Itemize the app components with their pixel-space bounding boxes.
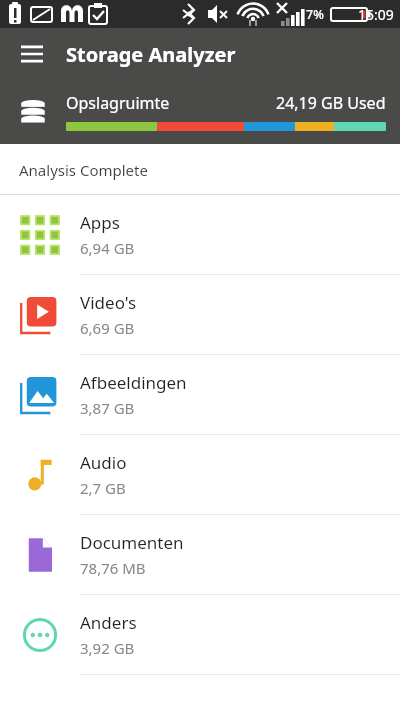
staticText: 3,92 GB (80, 638, 135, 658)
staticText: Audio (80, 451, 127, 474)
button[interactable]: Opslagruimte (0, 80, 400, 142)
staticText: 15:09 (358, 5, 394, 24)
button[interactable]: Documenten (0, 515, 400, 594)
button[interactable]: Apps (0, 195, 400, 274)
button[interactable]: Open navigation menu (12, 34, 52, 74)
staticText: 6,69 GB (80, 318, 135, 338)
button[interactable]: Anders (0, 595, 400, 674)
staticText: Opslagruimte (66, 92, 170, 114)
staticText: Documenten (80, 531, 184, 554)
staticText: Analysis Complete (19, 160, 148, 180)
staticText: Apps (80, 211, 120, 234)
staticText: Storage Analyzer (66, 41, 236, 68)
staticText: 2,7 GB (80, 478, 126, 498)
staticText: 24,19 GB Used (276, 92, 386, 114)
button[interactable]: Afbeeldingen (0, 355, 400, 434)
staticText: 6,94 GB (80, 238, 135, 258)
staticText: 3,87 GB (80, 398, 135, 418)
button[interactable]: Video's (0, 275, 400, 354)
staticText: 7% (306, 6, 324, 23)
staticText: Afbeeldingen (80, 371, 187, 394)
button[interactable]: Audio (0, 435, 400, 514)
staticText: 78,76 MB (80, 558, 146, 578)
staticText: Video's (80, 291, 137, 314)
staticText: Anders (80, 611, 137, 634)
